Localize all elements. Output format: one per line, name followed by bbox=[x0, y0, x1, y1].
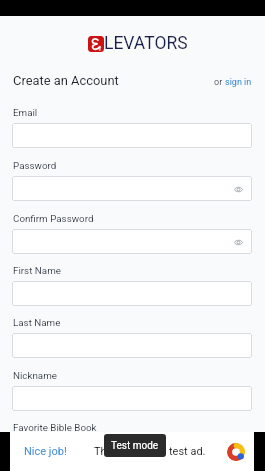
button[interactable]: Show password bbox=[231, 235, 245, 249]
button[interactable] bbox=[12, 333, 252, 358]
staticText: This is bbox=[94, 445, 127, 458]
staticText: or bbox=[214, 77, 225, 88]
staticText: Last Name bbox=[13, 317, 61, 328]
staticText: Favorite Bible Book bbox=[13, 422, 97, 433]
staticText: Confirm Password bbox=[13, 213, 94, 224]
staticText: Email bbox=[13, 107, 38, 118]
button[interactable] bbox=[12, 386, 252, 411]
staticText: Nice job! bbox=[24, 445, 67, 458]
staticText: Password bbox=[13, 160, 57, 171]
button[interactable]: Show password bbox=[231, 182, 245, 196]
staticText: Create an Account bbox=[13, 73, 119, 88]
staticText: First Name bbox=[13, 265, 61, 276]
button[interactable]: Show password bbox=[12, 176, 252, 201]
button[interactable] bbox=[12, 123, 252, 148]
staticText: sign in bbox=[225, 77, 252, 88]
button[interactable]: sign in bbox=[225, 77, 252, 88]
staticText: LEVATORS bbox=[104, 33, 188, 54]
staticText: Test mode bbox=[111, 440, 159, 452]
button[interactable]: Nice job! bbox=[10, 432, 254, 471]
staticText: test ad. bbox=[169, 445, 206, 458]
staticText: Nickname bbox=[13, 370, 57, 381]
button[interactable] bbox=[12, 281, 252, 306]
button[interactable]: Show password bbox=[12, 229, 252, 254]
